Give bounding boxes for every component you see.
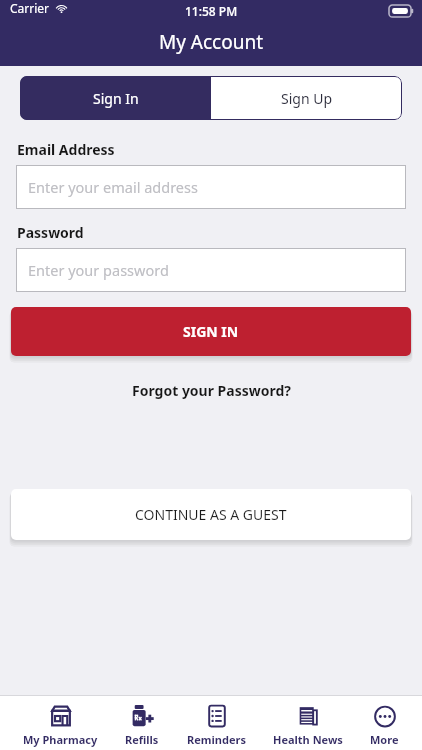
staticText: Enter your password — [28, 260, 169, 280]
button[interactable]: My Pharmacy — [19, 703, 102, 747]
other: More — [372, 703, 398, 729]
button[interactable]: Forgot your Password? — [126, 375, 297, 406]
staticText: Password — [17, 223, 84, 242]
other: Refills — [129, 703, 155, 729]
button[interactable]: Reminders — [183, 703, 250, 747]
staticText: 11:58 PM — [185, 3, 238, 19]
other: Health News — [295, 703, 321, 729]
staticText: Enter your email address — [28, 177, 198, 197]
other: My Pharmacy — [48, 703, 74, 729]
staticText: My Pharmacy — [23, 732, 98, 747]
button[interactable]: SIGN IN — [11, 307, 411, 356]
button[interactable]: Enter your password — [16, 248, 406, 292]
button[interactable]: Enter your email address — [16, 165, 406, 209]
staticText: Sign In — [93, 89, 139, 108]
staticText: Carrier — [10, 0, 50, 16]
button[interactable]: Refills — [121, 703, 163, 747]
button[interactable]: More — [366, 703, 403, 747]
button[interactable]: Sign In — [20, 76, 211, 120]
button[interactable]: Health News — [269, 703, 347, 747]
staticText: SIGN IN — [183, 322, 239, 341]
button[interactable]: CONTINUE AS A GUEST — [11, 489, 411, 540]
other: Reminders — [204, 703, 230, 729]
button[interactable]: Sign Up — [211, 76, 402, 120]
staticText: More — [370, 732, 399, 747]
staticText: Reminders — [187, 732, 246, 747]
staticText: Health News — [273, 732, 343, 747]
staticText: Refills — [125, 732, 159, 747]
staticText: Sign Up — [281, 89, 333, 108]
staticText: CONTINUE AS A GUEST — [135, 505, 287, 524]
staticText: My Account — [159, 29, 264, 55]
staticText: Email Address — [17, 140, 115, 159]
